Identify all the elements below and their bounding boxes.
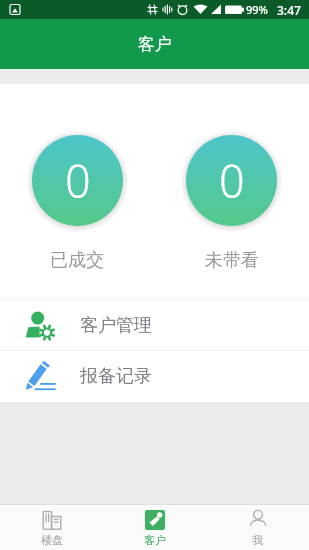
staticText: 0 <box>219 150 245 211</box>
button[interactable]: 0 <box>32 135 123 226</box>
staticText: 楼盘 <box>41 533 63 547</box>
other: 客户管理 <box>25 310 56 341</box>
button[interactable]: 楼盘 <box>0 505 103 550</box>
staticText: 客户 <box>138 34 172 55</box>
staticText: 已成交 <box>50 249 104 272</box>
staticText: 报备记录 <box>80 365 152 388</box>
staticText: 3:47 <box>277 2 301 18</box>
button[interactable]: 客户管理 <box>0 300 309 350</box>
staticText: 0 <box>65 150 91 211</box>
staticText: 客户管理 <box>80 314 152 337</box>
button[interactable]: 0 <box>186 135 277 226</box>
staticText: 客户 <box>144 533 166 547</box>
button[interactable]: 我 <box>206 505 309 550</box>
other: 报备记录 <box>25 361 56 392</box>
staticText: 未带看 <box>205 249 259 272</box>
staticText: 我 <box>252 533 263 547</box>
staticText: 99% <box>246 2 268 17</box>
button[interactable]: 报备记录 <box>0 351 309 401</box>
button[interactable]: 客户 <box>103 505 206 550</box>
